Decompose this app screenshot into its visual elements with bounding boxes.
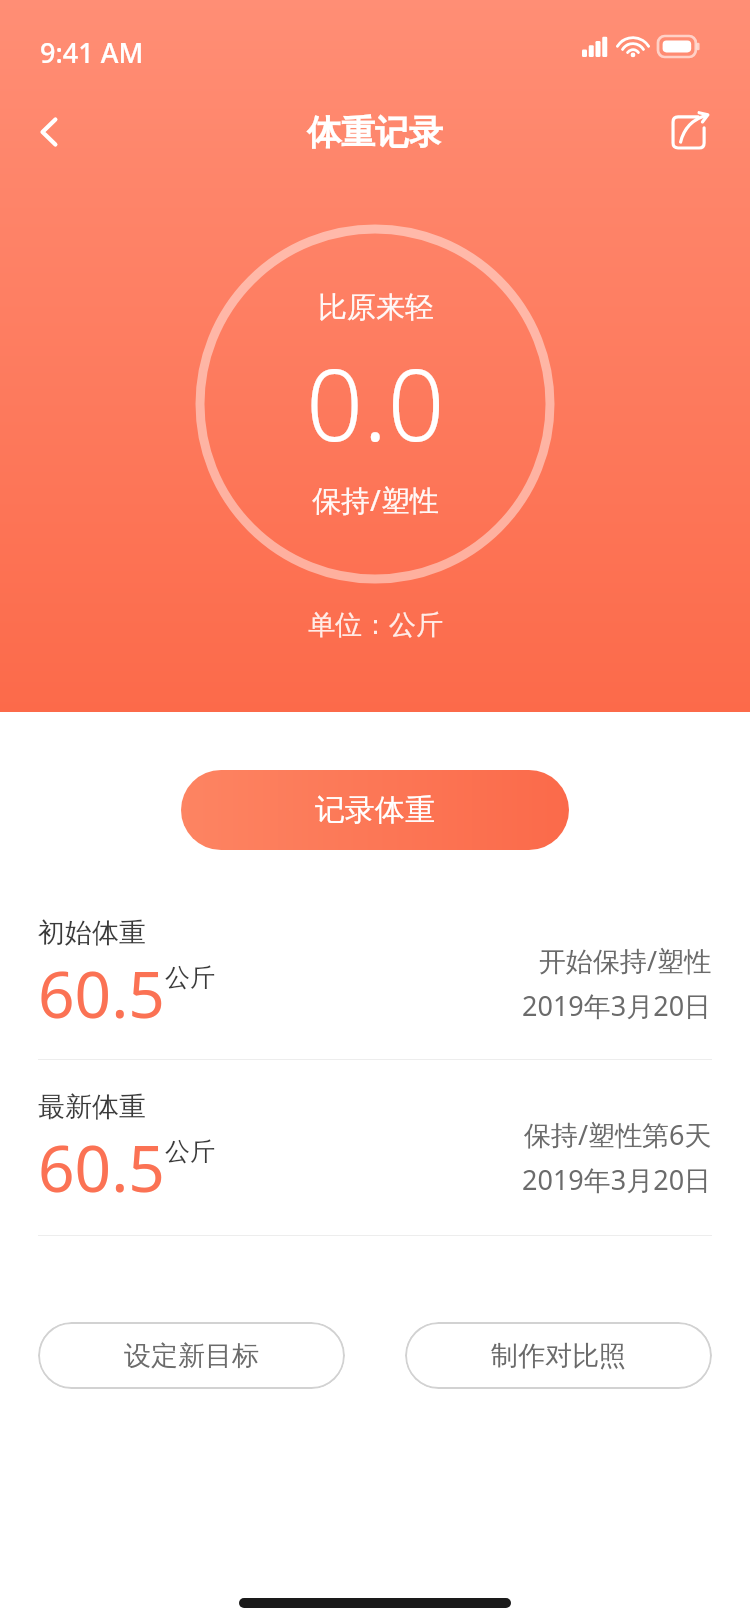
staticText: 比原来轻 <box>318 289 434 326</box>
staticText: 60.5 <box>38 1124 165 1211</box>
staticText: 2019年3月20日 <box>522 1161 712 1198</box>
staticText: 公斤 <box>165 962 215 993</box>
staticText: 设定新目标 <box>124 1339 259 1373</box>
button[interactable]: 记录体重 <box>181 770 569 850</box>
staticText: 开始保持/塑性 <box>539 942 712 979</box>
staticText: 制作对比照 <box>491 1339 626 1373</box>
staticText: 单位：公斤 <box>308 608 443 642</box>
staticText: 保持/塑性 <box>312 480 439 520</box>
staticText: 保持/塑性第6天 <box>524 1116 712 1153</box>
button[interactable]: Back <box>18 100 82 164</box>
staticText: 0.0 <box>306 334 445 470</box>
button[interactable]: 设定新目标 <box>38 1322 345 1389</box>
staticText: 9:41 AM <box>40 34 144 71</box>
staticText: 最新体重 <box>38 1090 146 1124</box>
staticText: 60.5 <box>38 950 165 1037</box>
staticText: 2019年3月20日 <box>522 987 712 1024</box>
button[interactable]: Share <box>658 101 720 163</box>
staticText: 体重记录 <box>307 111 443 154</box>
staticText: 公斤 <box>165 1136 215 1167</box>
button[interactable]: 制作对比照 <box>405 1322 712 1389</box>
staticText: 记录体重 <box>315 791 435 829</box>
staticText: 初始体重 <box>38 916 146 950</box>
